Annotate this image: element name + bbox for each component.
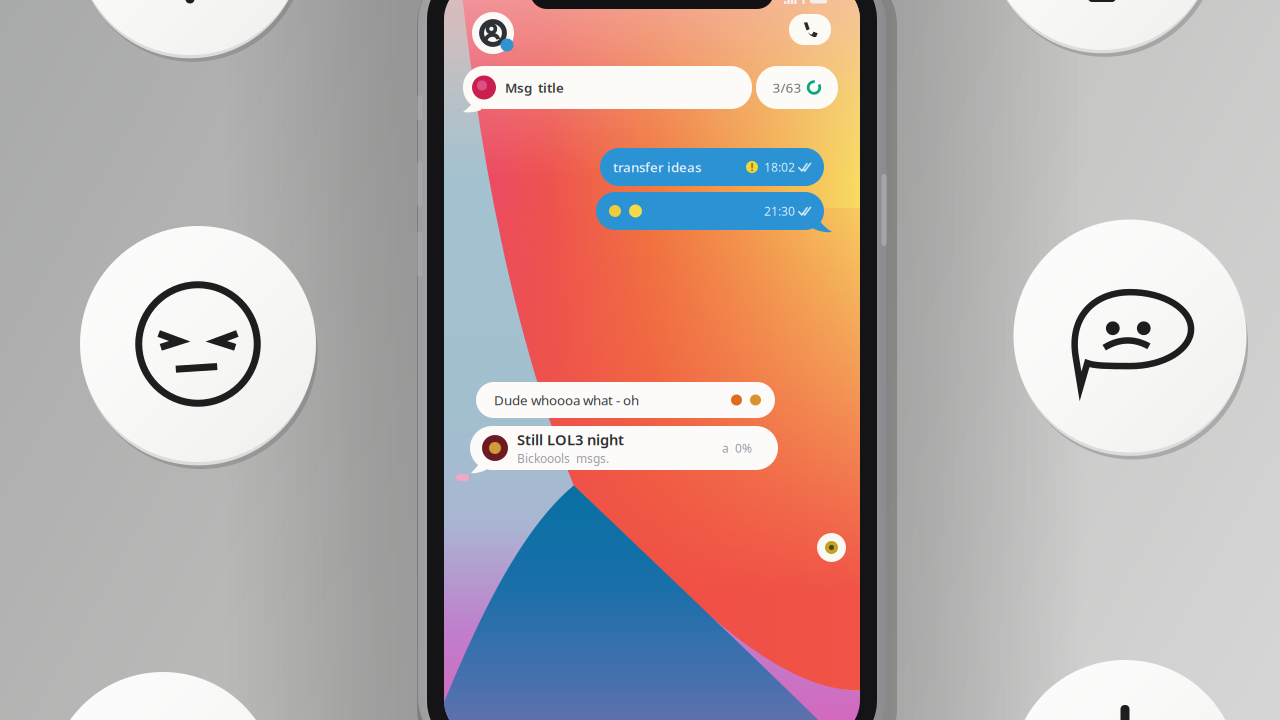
staticText: Msg title [505,79,564,96]
button[interactable]: Profile [470,10,516,56]
button[interactable]: 3/63 [756,66,838,109]
staticText: ! [750,160,753,174]
staticText: Dude whoooa what - oh [494,391,639,409]
staticText: 3/63 [772,79,801,96]
staticText: transfer ideas [613,158,701,176]
staticText: Bickoools msgs. [517,450,609,466]
button[interactable]: Still LOL3 night [470,426,778,476]
button[interactable]: Compose [817,533,846,562]
staticText: 21:30 [764,203,798,219]
button[interactable]: transfer ideas [600,148,824,186]
button[interactable]: 21:30 [596,192,832,234]
button[interactable]: Call [789,14,831,45]
staticText: Still LOL3 night [517,430,624,449]
staticText: a 0% [722,440,752,456]
button[interactable]: Msg title [463,66,752,114]
staticText: 18:02 [758,159,798,175]
button[interactable]: Dude whoooa what - oh [476,382,775,418]
